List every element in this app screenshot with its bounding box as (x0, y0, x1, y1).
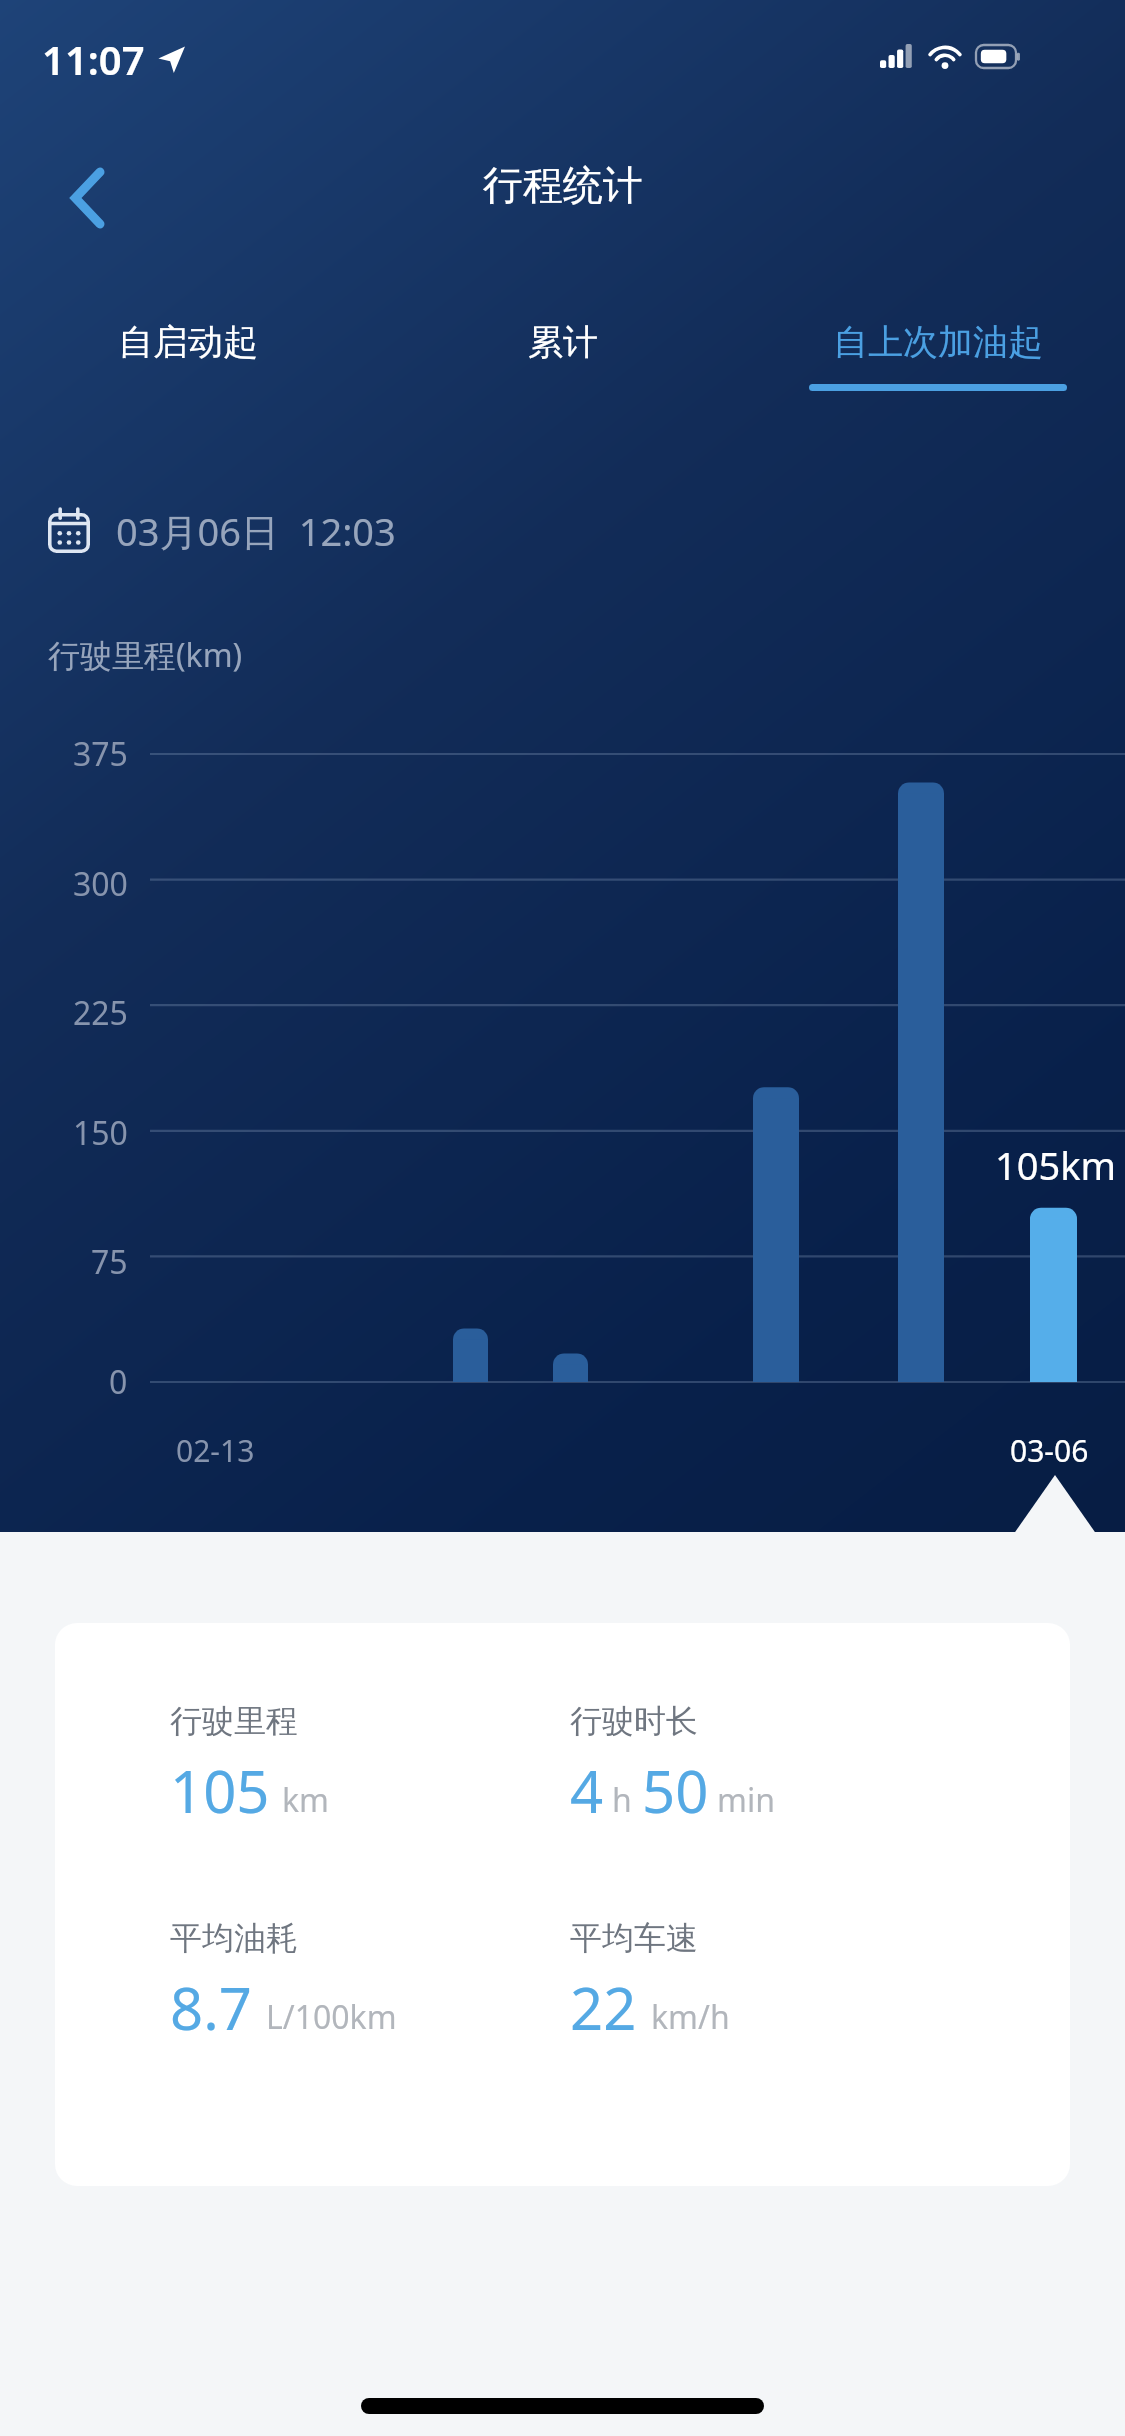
button[interactable]: 行驶里程 (55, 1623, 1070, 2186)
staticText: 平均车速 (570, 1918, 698, 1958)
staticText: 105 (170, 1751, 270, 1830)
button[interactable]: 自上次加油起 (750, 320, 1125, 430)
staticText: 自上次加油起 (833, 320, 1043, 364)
staticText: 自启动起 (118, 320, 258, 364)
staticText: 03月06日 12:03 (116, 505, 396, 557)
staticText: 300 (73, 862, 128, 906)
staticText: 0 (109, 1360, 128, 1404)
staticText: 03-06 (1010, 1430, 1089, 1471)
staticText: km/h (651, 1995, 730, 2039)
staticText: 行驶时长 (570, 1701, 698, 1741)
staticText: 11:07 (42, 32, 145, 86)
staticText: 4 (570, 1751, 604, 1830)
staticText: 75 (91, 1240, 128, 1284)
staticText: km (282, 1778, 330, 1822)
button[interactable]: Back (40, 150, 136, 246)
staticText: 8.7 (170, 1968, 252, 2047)
button[interactable]: 自启动起 (0, 320, 375, 430)
staticText: min (717, 1778, 775, 1822)
staticText: h (612, 1778, 632, 1822)
staticText: 375 (73, 732, 128, 776)
staticText: 行驶里程 (170, 1701, 298, 1741)
staticText: 105km (995, 1139, 1117, 1191)
staticText: L/100km (266, 1995, 397, 2039)
staticText: 22 (570, 1968, 637, 2047)
staticText: 150 (73, 1111, 128, 1155)
staticText: 累计 (528, 320, 598, 364)
staticText: 02-13 (176, 1430, 255, 1471)
staticText: 平均油耗 (170, 1918, 298, 1958)
staticText: 行驶里程(km) (48, 633, 243, 677)
staticText: 225 (73, 991, 128, 1035)
staticText: 行程统计 (483, 160, 643, 210)
staticText: 50 (642, 1751, 709, 1830)
button[interactable]: 累计 (375, 320, 750, 430)
